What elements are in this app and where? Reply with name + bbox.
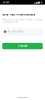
staticText: ▂▄▆ ◗ bbox=[34, 1, 42, 4]
staticText: 9:41 bbox=[3, 1, 9, 4]
staticText: Please enter your phone number to receiv… bbox=[2, 18, 42, 23]
staticText: Continue bbox=[18, 45, 27, 47]
staticText: Enter Your Phone Number bbox=[2, 13, 35, 16]
button[interactable]: Continue bbox=[2, 43, 43, 49]
staticText: +1 bbox=[8, 30, 10, 33]
staticText: Phone number bbox=[11, 30, 24, 33]
